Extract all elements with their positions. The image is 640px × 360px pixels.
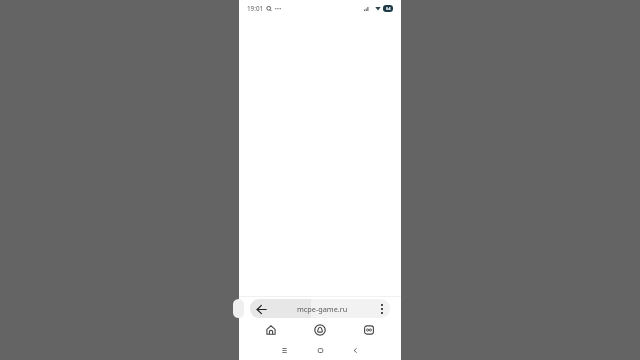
button[interactable] bbox=[348, 343, 362, 357]
staticText: 19:01 bbox=[247, 4, 264, 13]
button[interactable]: mcpe-game.ru bbox=[250, 299, 390, 318]
button[interactable] bbox=[277, 343, 291, 357]
button[interactable] bbox=[253, 301, 269, 317]
button[interactable] bbox=[313, 343, 327, 357]
button[interactable] bbox=[263, 322, 279, 338]
button[interactable] bbox=[361, 322, 377, 338]
staticText: mcpe-game.ru bbox=[297, 304, 348, 314]
button[interactable] bbox=[375, 302, 389, 316]
button[interactable] bbox=[311, 321, 329, 339]
staticText: 64 bbox=[386, 6, 391, 11]
